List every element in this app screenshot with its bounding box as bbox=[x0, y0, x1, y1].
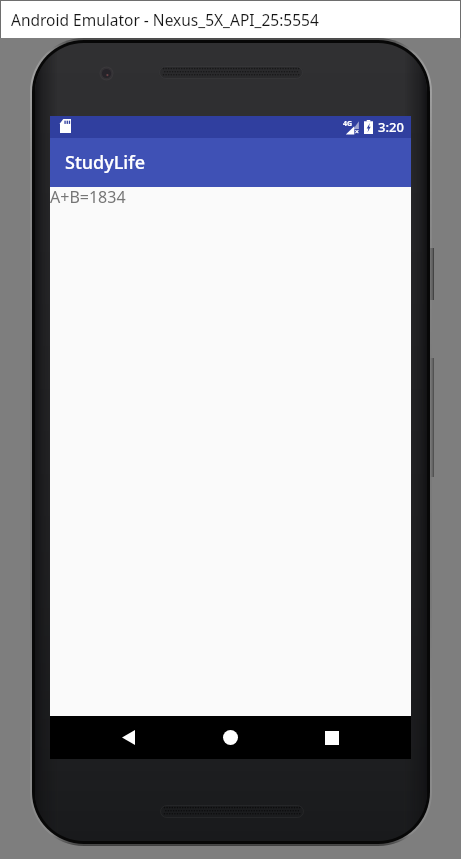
button[interactable]: Back bbox=[112, 716, 144, 759]
button[interactable]: Recent apps bbox=[316, 716, 348, 759]
staticText: StudyLife bbox=[65, 150, 145, 175]
button[interactable]: StudyLife bbox=[50, 138, 411, 187]
button[interactable]: Home bbox=[214, 716, 246, 759]
staticText: Android Emulator - Nexus_5X_API_25:5554 bbox=[11, 9, 319, 30]
staticText: 4G bbox=[343, 119, 353, 129]
staticText: A+B=1834 bbox=[50, 186, 126, 208]
staticText: 3:20 bbox=[378, 118, 404, 136]
